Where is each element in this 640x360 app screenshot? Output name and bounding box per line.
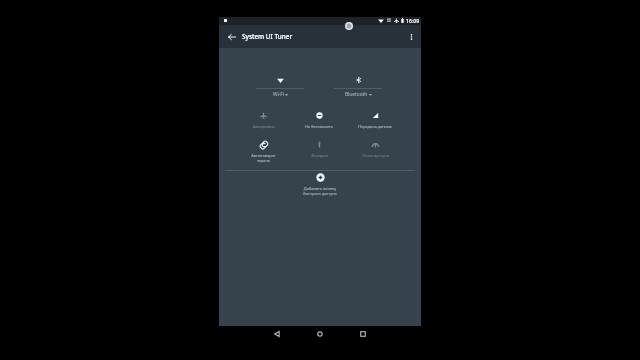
staticText: System UI Tuner <box>242 32 293 41</box>
button[interactable]: Автоповорот экрана <box>236 139 290 163</box>
button[interactable]: Авиарежим <box>236 110 290 134</box>
staticText: Фонарик <box>311 153 328 158</box>
button[interactable]: More options <box>403 25 419 48</box>
button[interactable]: Bluetooth <box>330 77 386 101</box>
staticText: Не беспокоить <box>305 124 333 129</box>
staticText: Автоповорот экрана <box>251 153 276 163</box>
button[interactable]: Передача данных <box>348 110 402 134</box>
button[interactable]: Не беспокоить <box>292 110 346 134</box>
button[interactable]: Back <box>269 326 285 342</box>
button[interactable]: Recents <box>355 326 371 342</box>
staticText: 16:09 <box>406 17 420 24</box>
button[interactable]: Точка доступа <box>348 139 402 163</box>
button[interactable]: Back <box>222 25 242 48</box>
staticText: Авиарежим <box>252 124 275 129</box>
staticText: Передача данных <box>358 124 392 129</box>
staticText: Bluetooth <box>345 91 368 98</box>
button[interactable]: Фонарик <box>292 139 346 163</box>
button[interactable]: Home <box>312 326 328 342</box>
button[interactable]: Добавить кнопку быстрого доступа <box>292 173 348 199</box>
staticText: Добавить кнопку быстрого доступа <box>303 186 337 196</box>
staticText: Точка доступа <box>362 153 389 158</box>
staticText: Wi-Fi <box>273 91 284 98</box>
button[interactable]: Wi-Fi <box>252 77 308 101</box>
